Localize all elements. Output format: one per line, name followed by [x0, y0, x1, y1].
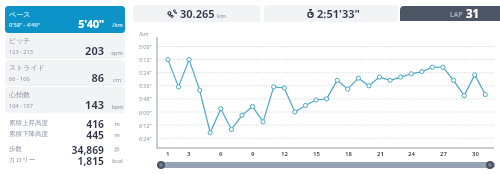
- staticText: 123 - 213: [9, 48, 33, 56]
- staticText: 30: [472, 150, 479, 158]
- button[interactable]: 30.265: [133, 5, 260, 22]
- staticText: ピッチ: [9, 36, 31, 45]
- staticText: 416: [5, 117, 104, 129]
- staticText: 5'36": [139, 82, 152, 89]
- button[interactable]: 歩数: [5, 143, 125, 155]
- staticText: 5'24": [139, 69, 152, 76]
- staticText: ストライド: [9, 63, 45, 72]
- staticText: 12: [281, 150, 288, 158]
- staticText: 445: [5, 128, 104, 140]
- staticText: 1: [166, 150, 170, 158]
- staticText: 66 - 106: [9, 75, 30, 83]
- staticText: 21: [377, 150, 384, 158]
- staticText: カロリー: [9, 156, 36, 164]
- staticText: 104 - 157: [9, 102, 33, 110]
- staticText: 24: [408, 150, 415, 158]
- staticText: 18: [345, 150, 352, 158]
- button[interactable]: ストライド: [5, 60, 125, 86]
- button[interactable]: カロリー: [5, 154, 125, 166]
- staticText: LAP: [450, 10, 463, 20]
- staticText: 9: [251, 150, 255, 158]
- staticText: 30.265: [180, 6, 215, 21]
- other: Range start: [157, 161, 165, 169]
- staticText: 5'48": [139, 95, 152, 102]
- staticText: 6'12": [139, 122, 152, 129]
- staticText: 5'12": [139, 56, 152, 63]
- staticText: kcal: [112, 157, 123, 165]
- button[interactable]: 2:51'33": [264, 5, 398, 22]
- staticText: 31: [466, 6, 480, 21]
- staticText: 累積下降高度: [9, 130, 48, 138]
- staticText: 累積上昇高度: [9, 119, 48, 127]
- button[interactable]: 累積上昇高度: [5, 117, 125, 129]
- staticText: 6: [219, 150, 223, 158]
- staticText: 6'24": [139, 135, 152, 142]
- staticText: /km: [139, 30, 149, 37]
- staticText: ペース: [9, 10, 31, 19]
- staticText: 2:51'33": [317, 6, 360, 21]
- staticText: 6'00": [139, 109, 152, 116]
- staticText: m: [114, 120, 120, 128]
- staticText: 歩数: [9, 145, 22, 153]
- staticText: 3: [187, 150, 191, 158]
- staticText: 86: [5, 70, 104, 85]
- staticText: 1,815: [5, 154, 104, 166]
- button[interactable]: ピッチ: [5, 33, 125, 59]
- staticText: cm: [113, 76, 121, 84]
- button[interactable]: LAP: [400, 6, 500, 21]
- staticText: m: [114, 131, 120, 139]
- staticText: 歩: [114, 146, 120, 153]
- staticText: 203: [5, 43, 104, 58]
- staticText: 9'58" - 4'49": [9, 21, 40, 29]
- staticText: 143: [5, 97, 104, 112]
- button[interactable]: [158, 162, 495, 168]
- staticText: /km: [112, 21, 123, 29]
- button[interactable]: 累積下降高度: [5, 128, 125, 140]
- staticText: 5'00": [139, 43, 152, 50]
- staticText: bpm: [111, 103, 124, 111]
- other: Range end: [486, 161, 494, 169]
- button[interactable]: ペース: [5, 6, 125, 33]
- staticText: 心拍数: [9, 90, 30, 99]
- staticText: spm: [111, 49, 123, 57]
- staticText: 15: [313, 150, 320, 158]
- button[interactable]: 心拍数: [5, 87, 125, 113]
- staticText: 27: [440, 150, 447, 158]
- staticText: km: [217, 12, 226, 20]
- staticText: 34,869: [5, 143, 104, 155]
- staticText: 5'40": [5, 17, 104, 31]
